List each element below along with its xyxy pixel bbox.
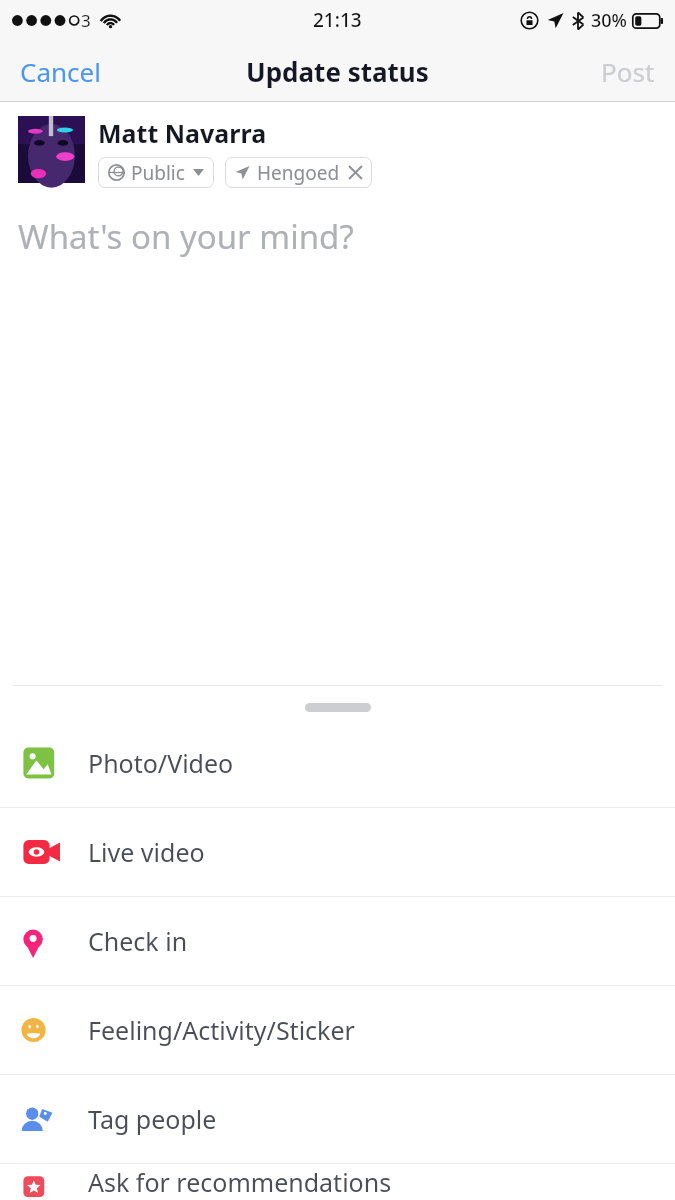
staticText: Check in bbox=[88, 924, 188, 958]
staticText: Live video bbox=[88, 835, 205, 869]
staticText: 30% bbox=[591, 8, 627, 33]
button[interactable]: Public bbox=[98, 157, 214, 188]
button[interactable]: Photo/Video bbox=[0, 719, 675, 807]
button[interactable]: Feeling/Activity/Sticker bbox=[0, 986, 675, 1074]
button[interactable]: Tag people bbox=[0, 1075, 675, 1163]
staticText: Update status bbox=[246, 54, 429, 89]
button[interactable]: Cancel bbox=[0, 42, 121, 101]
staticText: Photo/Video bbox=[88, 746, 234, 780]
staticText: What's on your mind? bbox=[18, 214, 354, 259]
button[interactable]: Post bbox=[581, 42, 675, 101]
staticText: Ask for recommendations bbox=[88, 1165, 392, 1199]
staticText: Feeling/Activity/Sticker bbox=[88, 1013, 355, 1047]
staticText: Hengoed bbox=[257, 160, 340, 186]
button[interactable]: Check in bbox=[0, 897, 675, 985]
staticText: Matt Navarra bbox=[98, 116, 267, 150]
staticText: Tag people bbox=[88, 1102, 217, 1136]
other: Profile photo bbox=[18, 116, 85, 183]
button[interactable]: Live video bbox=[0, 808, 675, 896]
button[interactable]: Ask for recommendations bbox=[0, 1164, 675, 1200]
staticText: 3 bbox=[81, 9, 91, 32]
staticText: Cancel bbox=[20, 54, 101, 89]
staticText: Public bbox=[131, 160, 185, 186]
staticText: Post bbox=[601, 54, 655, 89]
button[interactable]: Hengoed bbox=[225, 157, 372, 188]
staticText: 21:13 bbox=[313, 7, 362, 33]
